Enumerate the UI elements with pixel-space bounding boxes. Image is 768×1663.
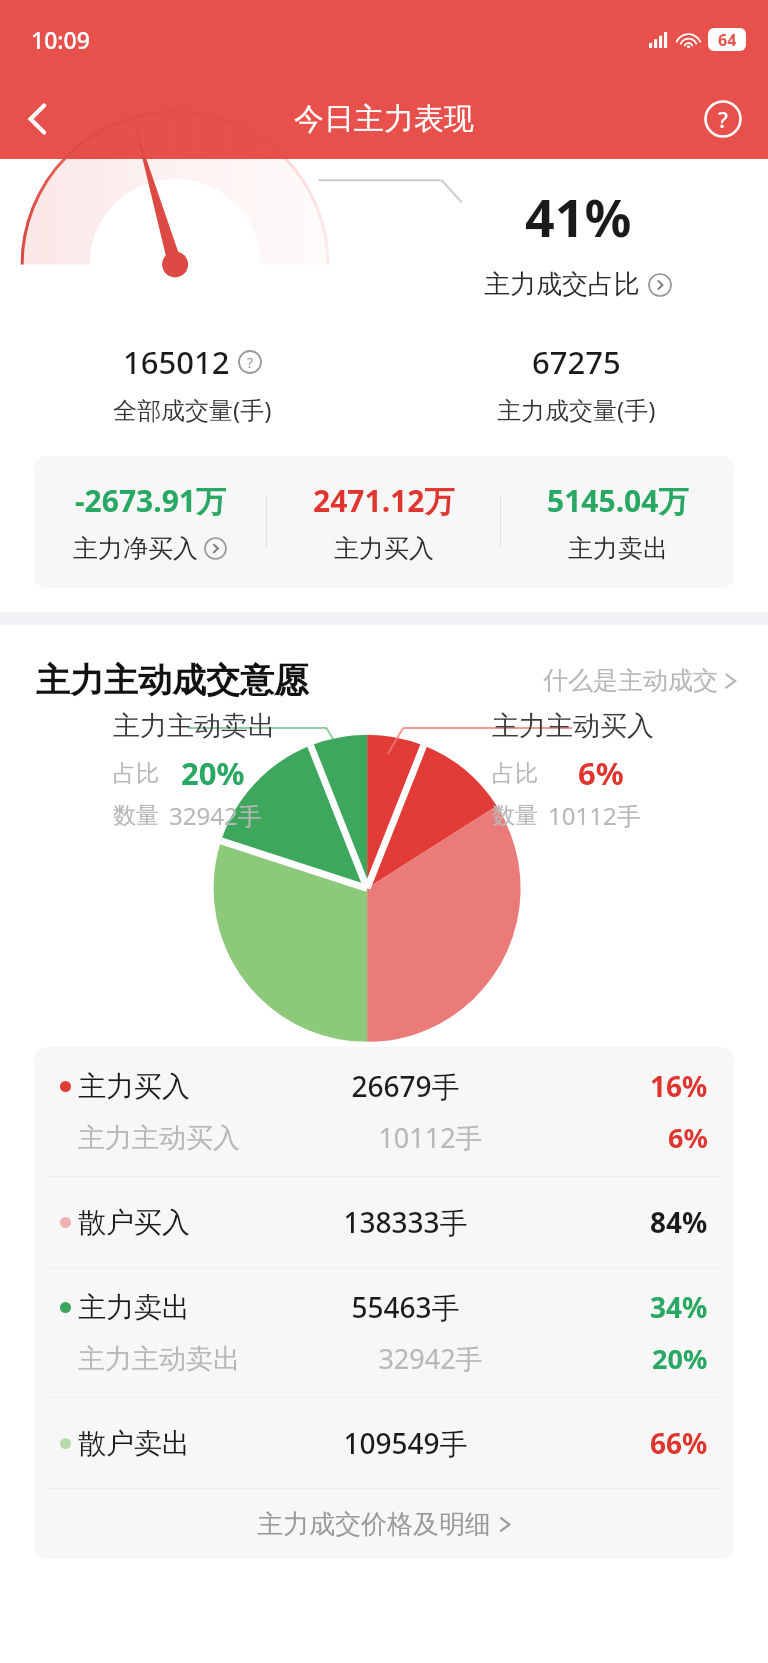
staticText: 占比 (492, 759, 538, 788)
staticText: 10:09 (31, 24, 90, 55)
staticText: 67275 (532, 341, 621, 383)
staticText: 26679手 (351, 1067, 460, 1105)
staticText: 主力成交价格及明细 (257, 1508, 491, 1541)
staticText: 10112手 (548, 799, 641, 832)
staticText: 6% (668, 1119, 708, 1156)
button[interactable]: 散户买入 (34, 1177, 734, 1267)
staticText: 主力主动成交意愿 (36, 659, 308, 702)
button[interactable]: 说明 (238, 350, 262, 374)
staticText: 32942手 (378, 1340, 483, 1377)
staticText: 主力主动买入 (492, 709, 654, 743)
staticText: 主力成交占比 (484, 268, 640, 301)
staticText: 165012 (123, 341, 230, 383)
staticText: 20% (181, 752, 245, 794)
staticText: 5145.04万 (547, 480, 689, 521)
staticText: 138333手 (343, 1203, 468, 1241)
staticText: 占比 (113, 759, 159, 788)
staticText: 主力买入 (78, 1069, 190, 1104)
staticText: 主力主动卖出 (113, 709, 275, 743)
staticText: 主力卖出 (568, 533, 668, 564)
staticText: 16% (650, 1067, 708, 1105)
button[interactable]: Back (10, 91, 66, 147)
button[interactable]: 什么是主动成交 (543, 665, 738, 696)
button[interactable]: 主力卖出 (34, 1268, 734, 1397)
staticText: 55463手 (351, 1288, 460, 1326)
staticText: 散户卖出 (78, 1426, 190, 1461)
staticText: ? (718, 104, 728, 134)
staticText: 2471.12万 (313, 480, 455, 521)
button[interactable]: 主力成交占比 (484, 268, 672, 301)
staticText: 10112手 (378, 1119, 483, 1156)
staticText: -2673.91万 (75, 480, 226, 521)
staticText: 41% (525, 181, 632, 252)
staticText: 什么是主动成交 (543, 665, 718, 696)
staticText: 34% (650, 1288, 708, 1326)
staticText: 今日主力表现 (294, 100, 474, 138)
staticText: 20% (652, 1340, 708, 1377)
staticText: 66% (650, 1424, 708, 1462)
staticText: 数量 (492, 801, 538, 830)
button[interactable]: 5145.04万 (501, 474, 734, 570)
staticText: 散户买入 (78, 1205, 190, 1240)
staticText: 数量 (113, 801, 159, 830)
staticText: 主力主动买入 (78, 1121, 240, 1155)
staticText: 32942手 (169, 799, 262, 832)
button[interactable]: 主力买入 (34, 1047, 734, 1176)
button[interactable]: -2673.91万 (34, 474, 266, 570)
staticText: 主力净买入 (73, 533, 198, 564)
staticText: 6% (578, 752, 624, 794)
staticText: 主力买入 (334, 533, 434, 564)
button[interactable]: 主力成交价格及明细 (34, 1489, 734, 1559)
staticText: 主力卖出 (78, 1290, 190, 1325)
button[interactable]: Help (696, 92, 750, 146)
staticText: 全部成交量(手) (113, 393, 272, 426)
staticText: ? (247, 353, 254, 372)
staticText: 主力主动卖出 (78, 1342, 240, 1376)
staticText: 主力成交量(手) (497, 393, 656, 426)
staticText: 109549手 (343, 1424, 468, 1462)
staticText: 84% (650, 1203, 708, 1241)
button[interactable]: 散户卖出 (34, 1398, 734, 1488)
button[interactable]: 2471.12万 (267, 474, 500, 570)
staticText: 64 (718, 29, 737, 51)
